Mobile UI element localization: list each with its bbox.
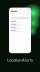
staticText: Location Alerts [7,57,33,63]
